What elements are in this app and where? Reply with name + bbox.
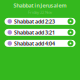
button[interactable]: Shabbat add 3:21	[4, 29, 75, 36]
button[interactable]: Shabbat add 4:04	[4, 40, 75, 47]
button[interactable]: Shabbat add 2:23	[4, 18, 75, 25]
staticText: Shabbat add 2:23	[14, 18, 55, 25]
staticText: Shabbat add 3:21	[14, 29, 55, 36]
staticText: Shabbat add 4:04	[14, 40, 55, 47]
staticText: Shabbat in Jerusalem	[13, 2, 66, 9]
staticText: Friday 22 Nov	[28, 10, 52, 15]
